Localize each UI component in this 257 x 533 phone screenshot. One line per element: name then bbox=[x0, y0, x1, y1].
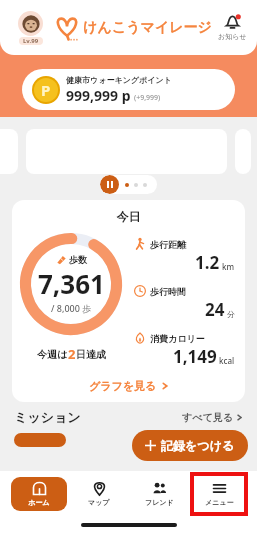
staticText: けんこうマイレージ bbox=[83, 19, 212, 37]
staticText: すべて見る bbox=[182, 411, 233, 424]
button[interactable]: グラフを見る bbox=[12, 379, 245, 393]
staticText: 999,999 p bbox=[66, 86, 131, 105]
staticText: (+9,999) bbox=[134, 93, 161, 103]
staticText: / 8,000 歩 bbox=[51, 302, 92, 314]
staticText: ホーム bbox=[28, 498, 50, 507]
staticText: 2 bbox=[68, 345, 76, 363]
staticText: ミッション bbox=[14, 409, 81, 425]
button[interactable]: マップ bbox=[71, 477, 127, 511]
staticText: 7,361 bbox=[38, 266, 105, 301]
staticText: 記録をつける bbox=[161, 438, 235, 453]
button[interactable]: すべて見る bbox=[182, 411, 243, 424]
staticText: 1.2 bbox=[195, 251, 220, 274]
staticText: お知らせ bbox=[218, 32, 247, 41]
staticText: 今日 bbox=[12, 209, 245, 224]
staticText: メニュー bbox=[205, 498, 234, 507]
button[interactable]: 記録をつける bbox=[132, 430, 248, 461]
staticText: 歩数 bbox=[69, 254, 87, 265]
staticText: P bbox=[41, 80, 51, 100]
staticText: 分 bbox=[227, 309, 235, 319]
button[interactable]: Lv.99 bbox=[10, 8, 50, 48]
button[interactable]: P bbox=[22, 69, 235, 110]
staticText: 日達成 bbox=[76, 348, 106, 361]
staticText: マップ bbox=[88, 498, 110, 507]
button[interactable]: ホーム bbox=[11, 477, 67, 511]
staticText: kcal bbox=[219, 355, 235, 366]
staticText: 24 bbox=[205, 298, 225, 321]
staticText: 今週は bbox=[37, 348, 68, 361]
staticText: 1,149 bbox=[173, 345, 217, 368]
staticText: 歩行距離 bbox=[150, 239, 186, 250]
button[interactable]: お知らせ bbox=[216, 14, 249, 41]
staticText: 消費カロリー bbox=[150, 333, 205, 344]
staticText: Lv.99 bbox=[23, 37, 39, 45]
button[interactable]: メニュー bbox=[191, 477, 247, 511]
staticText: グラフを見る bbox=[89, 379, 157, 393]
staticText: km bbox=[222, 261, 235, 272]
button[interactable] bbox=[235, 129, 251, 174]
staticText: 健康市ウォーキングポイント bbox=[66, 75, 172, 85]
staticText: フレンド bbox=[145, 498, 174, 507]
button[interactable]: フレンド bbox=[131, 477, 187, 511]
staticText: 歩行時間 bbox=[150, 286, 186, 297]
button[interactable]: 一時停止 bbox=[100, 175, 119, 194]
